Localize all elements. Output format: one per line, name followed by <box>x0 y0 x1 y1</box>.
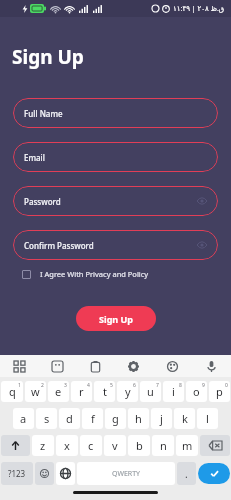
staticText: Sign Up <box>12 44 84 70</box>
button[interactable]: x <box>56 435 78 456</box>
button[interactable]: Language <box>56 462 75 485</box>
staticText: x <box>64 438 70 453</box>
button[interactable]: e <box>48 381 69 402</box>
button[interactable]: u <box>140 381 161 402</box>
staticText: 7 <box>156 382 159 389</box>
button[interactable]: d <box>59 408 80 429</box>
other: Show password <box>197 196 207 206</box>
staticText: s <box>44 411 50 426</box>
staticText: t <box>103 384 107 399</box>
button[interactable]: Email <box>13 142 218 172</box>
staticText: 5 <box>110 382 113 389</box>
button[interactable]: v <box>104 435 126 456</box>
button[interactable]: a <box>13 408 34 429</box>
staticText: 0 <box>225 382 228 389</box>
button[interactable]: y <box>117 381 138 402</box>
staticText: k <box>182 411 188 426</box>
button[interactable]: QWERTY <box>77 462 175 485</box>
staticText: e <box>55 384 62 399</box>
button[interactable]: g <box>105 408 126 429</box>
button[interactable]: j <box>151 408 172 429</box>
button[interactable]: I Agree With Privacy and Policy <box>22 269 149 279</box>
button[interactable]: m <box>176 435 198 456</box>
staticText: Full Name <box>24 108 63 119</box>
button[interactable]: Sign Up <box>76 306 156 331</box>
staticText: c <box>88 438 94 453</box>
button[interactable]: Enter <box>198 463 230 484</box>
staticText: 4 <box>87 382 90 389</box>
staticText: r <box>79 384 84 399</box>
button[interactable]: i <box>163 381 184 402</box>
staticText: QWERTY <box>112 469 141 479</box>
button[interactable]: n <box>152 435 174 456</box>
button[interactable]: Shift <box>1 435 30 456</box>
staticText: 9 <box>202 382 205 389</box>
staticText: j <box>160 411 163 426</box>
staticText: Password <box>24 196 61 207</box>
button[interactable]: Settings <box>114 355 153 377</box>
staticText: a <box>20 411 27 426</box>
staticText: f <box>91 411 95 426</box>
button[interactable]: h <box>128 408 149 429</box>
button[interactable]: Full Name <box>13 98 218 128</box>
button[interactable]: k <box>174 408 195 429</box>
staticText: o <box>193 384 200 399</box>
staticText: i <box>172 384 175 399</box>
staticText: l <box>206 411 209 426</box>
button[interactable]: w <box>25 381 46 402</box>
button[interactable]: Password <box>13 186 218 216</box>
button[interactable]: z <box>32 435 54 456</box>
staticText: n <box>160 438 167 453</box>
staticText: . <box>185 467 188 481</box>
staticText: h <box>135 411 142 426</box>
staticText: I Agree With Privacy and Policy <box>40 269 149 279</box>
button[interactable]: Emoji <box>35 462 54 485</box>
button[interactable]: b <box>128 435 150 456</box>
staticText: w <box>31 384 40 399</box>
button[interactable]: f <box>82 408 103 429</box>
staticText: u <box>147 384 154 399</box>
staticText: 2 <box>41 382 44 389</box>
button[interactable]: o <box>186 381 207 402</box>
button[interactable]: Voice input <box>192 355 231 377</box>
staticText: 3 <box>64 382 67 389</box>
staticText: ?123 <box>8 468 26 479</box>
button[interactable]: s <box>36 408 57 429</box>
button[interactable]: . <box>177 462 196 485</box>
button[interactable]: r <box>71 381 92 402</box>
staticText: v <box>112 438 118 453</box>
staticText: ق.ظ ۲۰۸ | ۱۱:۴۹ <box>173 4 225 14</box>
staticText: y <box>125 384 131 399</box>
staticText: d <box>66 411 73 426</box>
staticText: 1 <box>18 382 21 389</box>
button[interactable]: q <box>1 381 23 402</box>
button[interactable]: Confirm Password <box>13 230 218 260</box>
button[interactable]: Apps <box>0 355 38 377</box>
button[interactable]: l <box>197 408 218 429</box>
staticText: g <box>112 411 119 426</box>
button[interactable]: p <box>209 381 230 402</box>
button[interactable]: ?123 <box>1 462 33 485</box>
staticText: p <box>216 384 223 399</box>
staticText: Sign Up <box>99 313 134 325</box>
staticText: m <box>182 438 193 453</box>
staticText: 6 <box>133 382 136 389</box>
staticText: q <box>9 384 16 399</box>
button[interactable]: c <box>80 435 102 456</box>
button[interactable]: Backspace <box>200 435 230 456</box>
staticText: z <box>40 438 46 453</box>
staticText: Email <box>24 152 45 163</box>
staticText: Confirm Password <box>24 240 94 251</box>
button[interactable]: t <box>94 381 115 402</box>
other: Show password <box>197 240 207 250</box>
staticText: 8 <box>179 382 182 389</box>
button[interactable]: Themes <box>153 355 192 377</box>
button[interactable]: Stickers <box>38 355 76 377</box>
button[interactable]: Clipboard <box>76 355 114 377</box>
staticText: b <box>136 438 143 453</box>
